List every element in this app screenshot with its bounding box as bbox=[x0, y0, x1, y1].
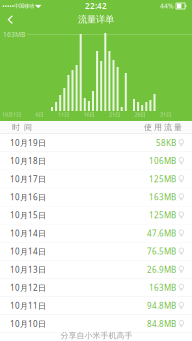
staticText: 10月14日 bbox=[10, 228, 46, 239]
staticText: 21日 bbox=[109, 111, 120, 118]
staticText: 163MB bbox=[3, 30, 25, 39]
staticText: 10月12日 bbox=[10, 282, 46, 293]
staticText: 10月1日 bbox=[2, 111, 21, 118]
staticText: 10月17日 bbox=[10, 174, 46, 184]
button[interactable]: 10月17日 bbox=[0, 170, 192, 188]
button[interactable]: 10月18日 bbox=[0, 152, 192, 170]
staticText: 中国移动 bbox=[14, 3, 34, 9]
button[interactable]: 10月10日 bbox=[0, 315, 192, 333]
staticText: 94.8MB bbox=[147, 300, 176, 311]
staticText: 76.5MB bbox=[147, 246, 176, 257]
staticText: 26日 bbox=[134, 111, 145, 118]
staticText: 106MB bbox=[149, 156, 176, 166]
staticText: 47.6MB bbox=[147, 228, 176, 239]
staticText: 163MB bbox=[149, 282, 176, 293]
staticText: 125MB bbox=[149, 210, 176, 220]
staticText: 使 用 流 量 bbox=[144, 122, 182, 132]
staticText: 16日 bbox=[83, 111, 94, 118]
button[interactable]: 10月11日 bbox=[0, 297, 192, 315]
staticText: 10月11日 bbox=[10, 300, 46, 311]
staticText: 10月14日 bbox=[10, 246, 46, 257]
staticText: 6日 bbox=[35, 111, 43, 118]
staticText: 31日 bbox=[160, 111, 171, 118]
staticText: 10月16日 bbox=[10, 192, 46, 202]
staticText: 10月10日 bbox=[10, 318, 46, 329]
staticText: 84.8MB bbox=[147, 318, 176, 329]
staticText: 分享自小米手机高手 bbox=[60, 331, 132, 340]
staticText: 流量详单 bbox=[78, 14, 114, 25]
button[interactable]: 10月13日 bbox=[0, 261, 192, 279]
button[interactable]: 10月19日 bbox=[0, 134, 192, 152]
staticText: 26.9MB bbox=[147, 264, 176, 275]
staticText: 125MB bbox=[149, 174, 176, 184]
staticText: 58KB bbox=[156, 137, 176, 148]
button[interactable]: 10月12日 bbox=[0, 279, 192, 297]
button[interactable]: 10月14日 bbox=[0, 243, 192, 261]
staticText: 10月18日 bbox=[10, 156, 46, 166]
staticText: 10月15日 bbox=[10, 210, 46, 220]
staticText: 44% bbox=[160, 2, 174, 10]
staticText: 22:42 bbox=[85, 1, 107, 11]
staticText: 163MB bbox=[149, 192, 176, 202]
button[interactable]: Back bbox=[0, 11, 16, 27]
staticText: 10月13日 bbox=[10, 264, 46, 275]
staticText: 时 间 bbox=[12, 122, 32, 132]
staticText: 11日 bbox=[58, 111, 69, 118]
button[interactable]: 10月16日 bbox=[0, 188, 192, 206]
staticText: 10月19日 bbox=[10, 137, 46, 148]
button[interactable]: 10月15日 bbox=[0, 206, 192, 224]
button[interactable]: 10月14日 bbox=[0, 224, 192, 243]
